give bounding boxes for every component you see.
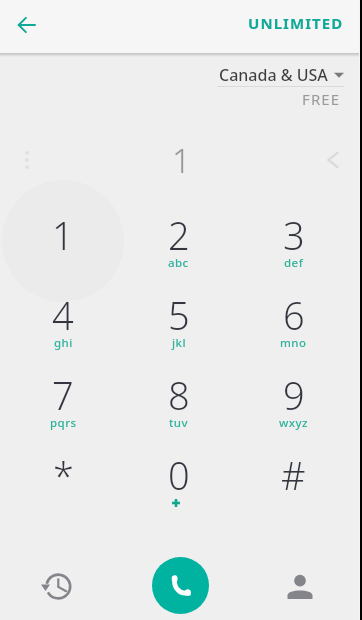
staticText: ghi [54, 335, 73, 351]
staticText: 5 [168, 289, 190, 341]
staticText: 4 [52, 289, 74, 341]
button[interactable]: 9 [236, 360, 351, 440]
staticText: # [281, 449, 306, 501]
button[interactable]: 5 [121, 280, 236, 360]
button[interactable]: 4 [5, 280, 121, 360]
staticText: jkl [172, 335, 186, 351]
button[interactable]: Back [9, 8, 43, 42]
button[interactable]: Call [152, 557, 209, 614]
staticText: 1 [52, 209, 74, 261]
staticText: tuv [169, 415, 189, 431]
staticText: abc [168, 255, 189, 271]
staticText: 2 [168, 209, 190, 261]
button[interactable]: 1 [5, 200, 121, 280]
button[interactable]: 7 [5, 360, 121, 440]
staticText: 0 [168, 449, 190, 501]
button[interactable]: 0 [121, 440, 236, 520]
button[interactable]: 3 [236, 200, 351, 280]
button[interactable]: 2 [121, 200, 236, 280]
staticText: Canada & USA [219, 64, 328, 86]
staticText: def [284, 255, 304, 271]
button[interactable]: Call history [31, 564, 75, 608]
button[interactable]: UNLIMITED [230, 1, 362, 45]
button[interactable]: 6 [236, 280, 351, 360]
button[interactable]: Delete [314, 141, 352, 179]
staticText: pqrs [50, 415, 77, 431]
staticText: mno [280, 335, 307, 351]
staticText: FREE [302, 89, 341, 109]
staticText: 1 [172, 138, 191, 183]
button[interactable]: # [236, 440, 351, 520]
staticText: * [53, 449, 74, 501]
staticText: 3 [283, 209, 305, 261]
button[interactable]: Canada & USA [219, 64, 344, 86]
button[interactable]: 8 [121, 360, 236, 440]
button[interactable]: * [5, 440, 121, 520]
staticText: 7 [52, 369, 74, 421]
button[interactable]: Contacts [278, 564, 322, 608]
staticText: 8 [168, 369, 190, 421]
staticText: 6 [283, 289, 305, 341]
staticText: wxyz [279, 415, 308, 431]
staticText: 9 [283, 369, 305, 421]
staticText: UNLIMITED [248, 13, 344, 33]
